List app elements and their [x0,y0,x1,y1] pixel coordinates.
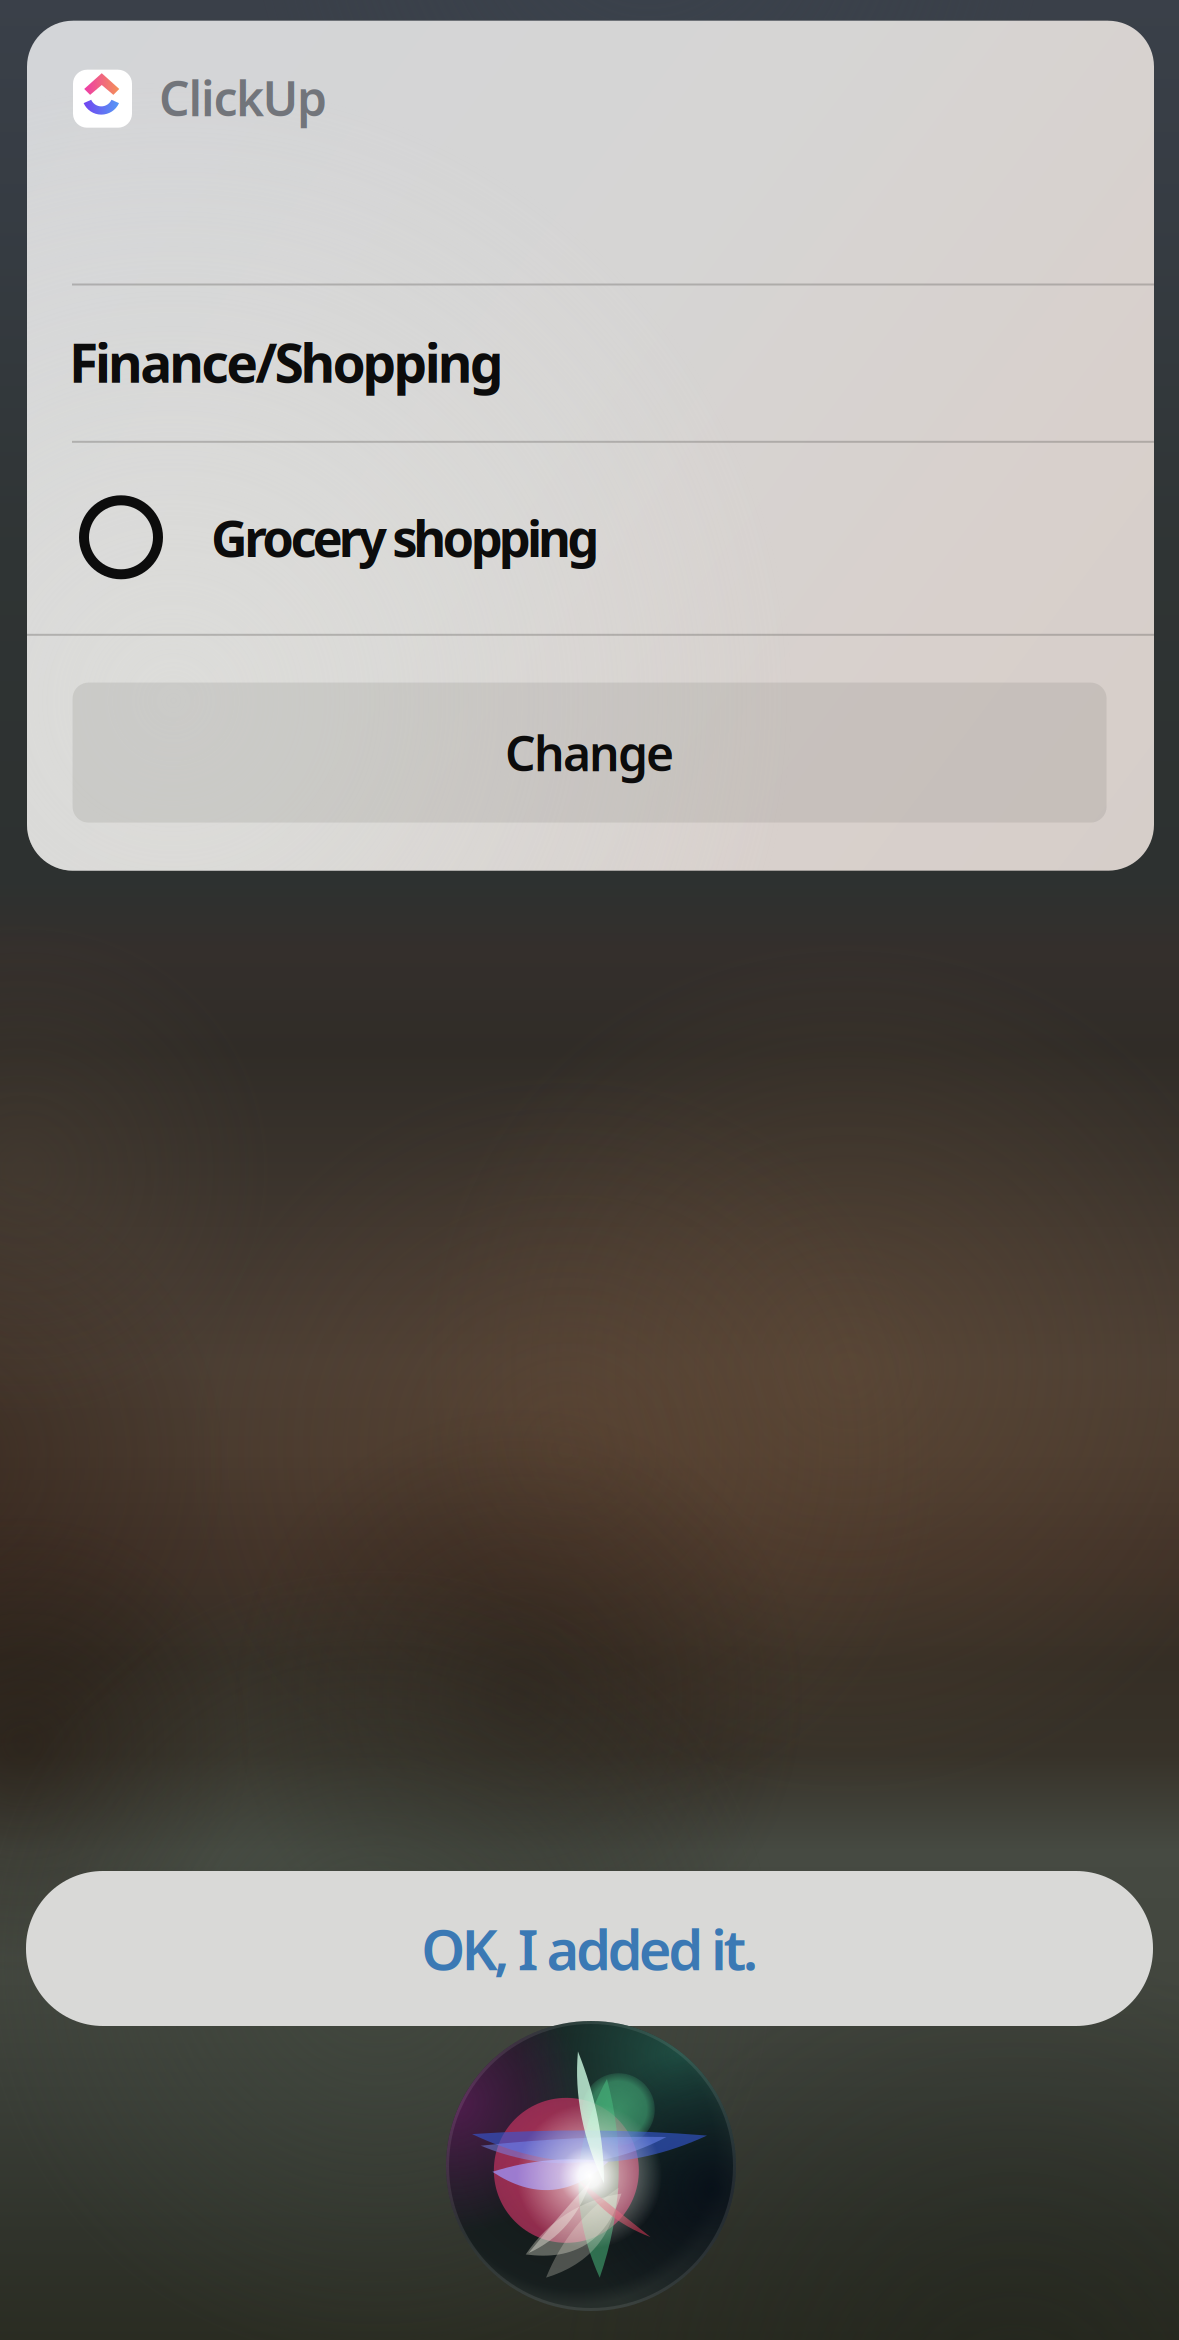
button[interactable]: ClickUp [73,70,1154,128]
staticText: Grocery shopping [211,504,599,571]
button[interactable]: Mark Grocery shopping complete [69,485,173,589]
button[interactable]: OK, I added it. [26,1871,1153,2026]
staticText: OK, I added it. [421,1911,758,1986]
button[interactable]: Finance/Shopping [27,283,1154,441]
button[interactable]: Grocery shopping [27,441,1154,634]
staticText: Finance/Shopping [69,327,504,397]
staticText: ClickUp [159,66,327,129]
button[interactable]: Change [73,683,1107,823]
staticText: Change [505,721,674,784]
